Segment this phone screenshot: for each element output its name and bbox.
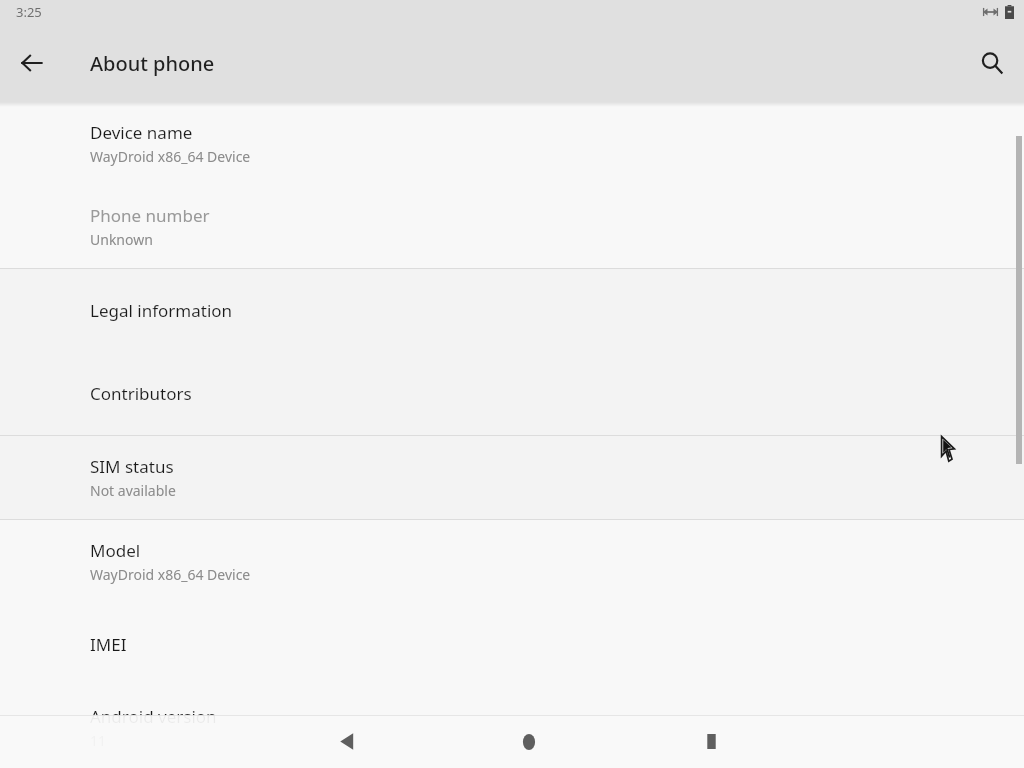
button[interactable]: Recent apps xyxy=(620,715,802,768)
button[interactable]: Model xyxy=(0,520,1024,603)
staticText: Device name xyxy=(90,121,193,144)
staticText: Model xyxy=(90,539,141,562)
button[interactable]: Contributors xyxy=(0,352,1024,435)
staticText: Android version xyxy=(90,705,217,728)
button[interactable]: Android version xyxy=(0,686,1024,768)
button[interactable]: IMEI xyxy=(0,603,1024,686)
staticText: Legal information xyxy=(90,299,233,322)
button[interactable]: Device name xyxy=(0,102,1024,185)
button[interactable]: Phone number xyxy=(0,185,1024,268)
button[interactable]: Navigate up xyxy=(10,41,54,85)
staticText: IMEI xyxy=(90,633,127,656)
button[interactable]: Home xyxy=(438,715,620,768)
staticText: Phone number xyxy=(90,204,210,227)
staticText: Unknown xyxy=(90,230,153,249)
button[interactable]: Back xyxy=(256,715,438,768)
staticText: About phone xyxy=(90,50,215,77)
button[interactable]: Legal information xyxy=(0,269,1024,352)
staticText: Not available xyxy=(90,481,176,500)
button[interactable]: Search xyxy=(970,41,1014,85)
staticText: 3:25 xyxy=(16,3,42,21)
staticText: WayDroid x86_64 Device xyxy=(90,565,251,584)
staticText: Contributors xyxy=(90,382,192,405)
button[interactable]: SIM status xyxy=(0,436,1024,519)
staticText: WayDroid x86_64 Device xyxy=(90,147,251,166)
staticText: SIM status xyxy=(90,455,174,478)
